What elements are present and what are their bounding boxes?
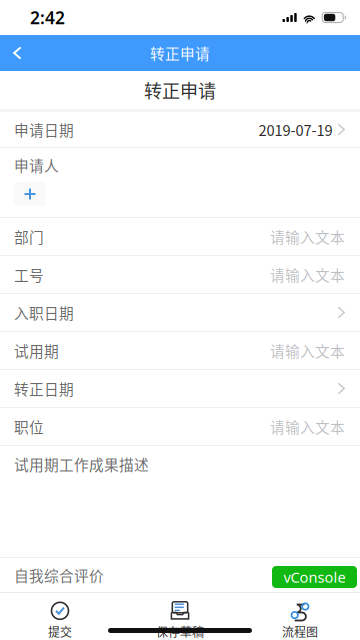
staticText: 申请人 bbox=[14, 154, 59, 176]
button[interactable]: 申请人 bbox=[0, 148, 360, 217]
button[interactable]: Back bbox=[0, 35, 44, 71]
button[interactable]: 提交 bbox=[0, 593, 120, 640]
staticText: 提交 bbox=[48, 623, 72, 640]
button[interactable]: 工号 bbox=[0, 256, 360, 293]
staticText: 请输入文本 bbox=[270, 340, 345, 361]
staticText: 部门 bbox=[14, 226, 44, 247]
staticText: 工号 bbox=[14, 264, 44, 285]
staticText: 转正申请 bbox=[150, 42, 210, 64]
staticText: vConsole bbox=[283, 567, 345, 587]
staticText: 请输入文本 bbox=[270, 264, 345, 285]
staticText: 请输入文本 bbox=[270, 226, 345, 247]
staticText: 试用期工作成果描述 bbox=[14, 453, 149, 475]
button[interactable]: 流程图 bbox=[240, 593, 360, 640]
staticText: 试用期 bbox=[14, 340, 59, 361]
button[interactable]: vConsole bbox=[272, 566, 357, 588]
staticText: 2019-07-19 bbox=[258, 119, 332, 140]
staticText: 申请日期 bbox=[14, 119, 74, 140]
staticText: 职位 bbox=[14, 416, 44, 437]
staticText: 入职日期 bbox=[14, 302, 74, 323]
staticText: 2:42 bbox=[30, 6, 65, 29]
button[interactable]: 部门 bbox=[0, 218, 360, 255]
staticText: 流程图 bbox=[282, 623, 318, 640]
staticText: 转正申请 bbox=[144, 77, 216, 103]
button[interactable]: 转正日期 bbox=[0, 370, 360, 407]
button[interactable]: 入职日期 bbox=[0, 294, 360, 331]
button[interactable]: 职位 bbox=[0, 408, 360, 445]
staticText: 转正日期 bbox=[14, 378, 74, 399]
button[interactable]: 自我综合评价 bbox=[0, 558, 360, 592]
staticText: 保存草稿 bbox=[156, 623, 204, 640]
button[interactable]: 申请日期 bbox=[0, 112, 360, 147]
button[interactable]: 试用期 bbox=[0, 332, 360, 369]
staticText: 请输入文本 bbox=[270, 416, 345, 437]
button[interactable]: 试用期工作成果描述 bbox=[0, 446, 360, 557]
button[interactable]: 保存草稿 bbox=[120, 593, 240, 640]
staticText: 自我综合评价 bbox=[14, 564, 104, 586]
